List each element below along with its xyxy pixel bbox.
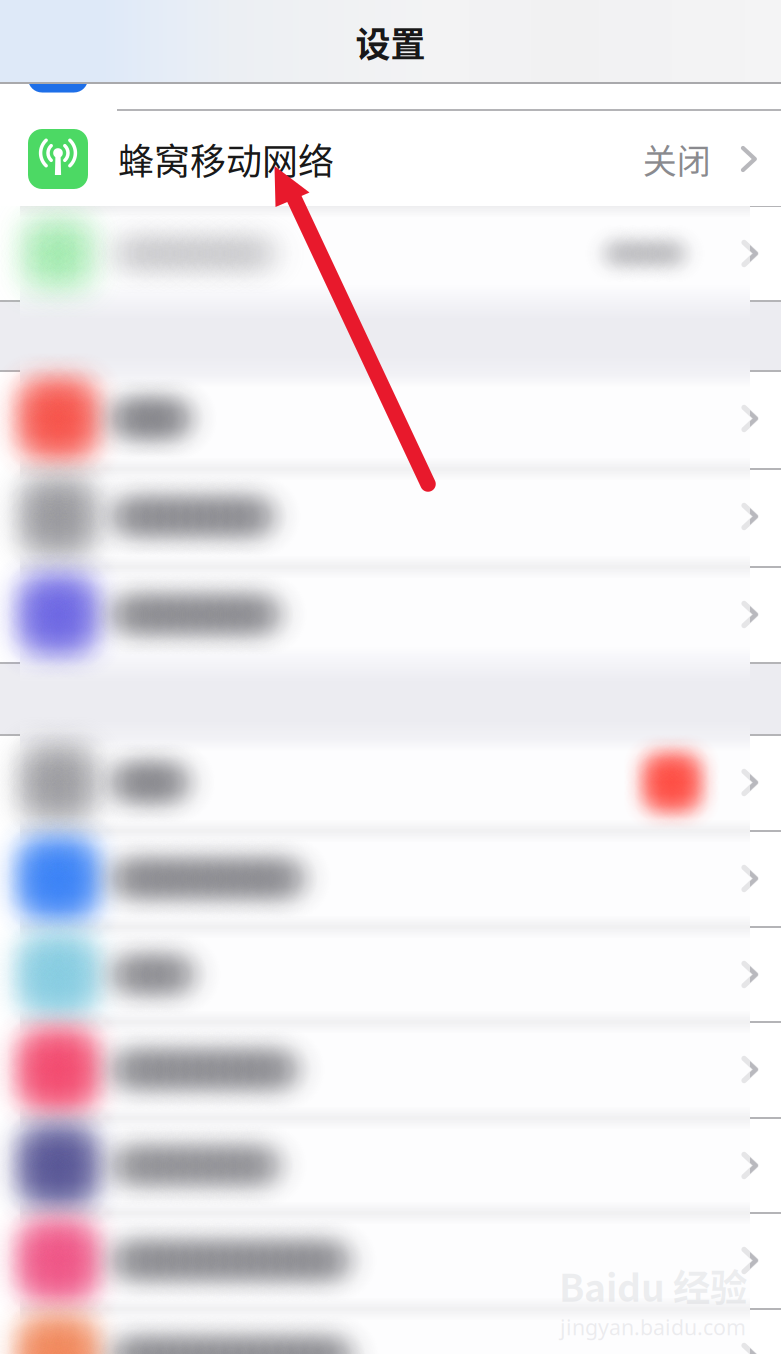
button[interactable]: 蜂窝移动网络 bbox=[0, 112, 781, 206]
staticText: Baidu 经验 bbox=[559, 1258, 747, 1312]
staticText: 设置 bbox=[355, 17, 425, 67]
staticText: 蜂窝移动网络 bbox=[118, 133, 334, 185]
staticText: jingyan.baidu.com bbox=[560, 1312, 746, 1342]
staticText: 关闭 bbox=[643, 134, 711, 184]
